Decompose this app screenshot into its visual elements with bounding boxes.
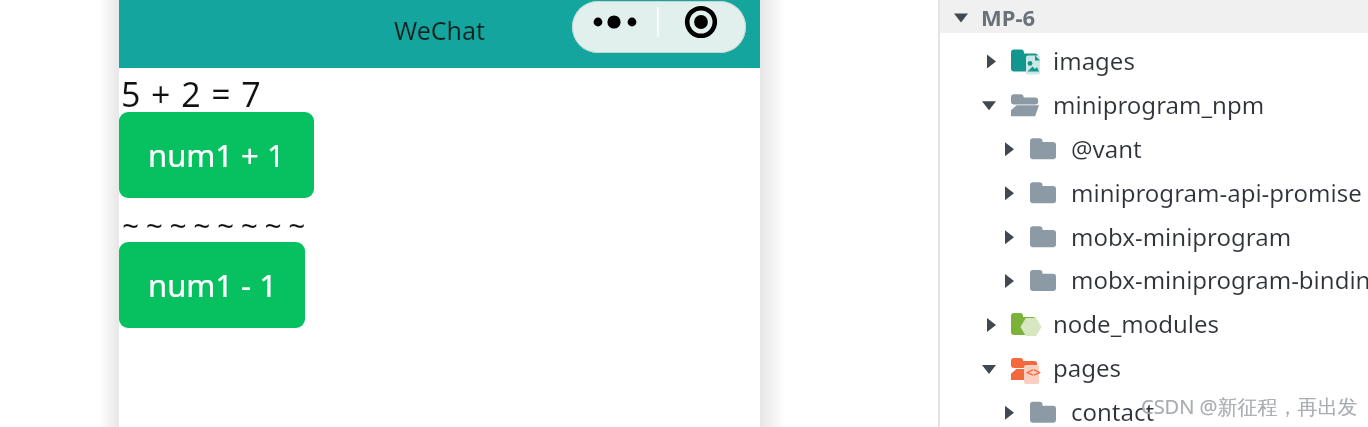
- button[interactable]: [940, 172, 1368, 215]
- button[interactable]: [940, 392, 1368, 427]
- staticText: 5 + 2 = 7: [121, 71, 262, 117]
- staticText: WeChat: [119, 13, 760, 47]
- staticText: miniprogram-api-promise: [1071, 176, 1362, 209]
- button[interactable]: [940, 128, 1368, 171]
- staticText: node_modules: [1053, 307, 1220, 340]
- staticText: pages: [1053, 351, 1122, 384]
- button[interactable]: num1 + 1: [119, 112, 314, 198]
- button[interactable]: [940, 260, 1368, 303]
- button[interactable]: [940, 0, 1368, 33]
- staticText: contact: [1071, 395, 1155, 427]
- staticText: MP-6: [981, 2, 1036, 32]
- button[interactable]: [940, 40, 1368, 83]
- button[interactable]: [940, 304, 1368, 347]
- staticText: @vant: [1071, 132, 1142, 165]
- staticText: num1 - 1: [148, 264, 277, 306]
- button[interactable]: [940, 84, 1368, 127]
- staticText: <>: [1026, 363, 1041, 381]
- staticText: num1 + 1: [148, 134, 285, 176]
- staticText: miniprogram_npm: [1053, 88, 1265, 121]
- staticText: mobx-miniprogram: [1071, 220, 1292, 253]
- button[interactable]: [940, 216, 1368, 259]
- staticText: CSDN @新征程，再出发: [1141, 393, 1358, 420]
- button[interactable]: [940, 348, 1368, 391]
- staticText: images: [1053, 44, 1135, 77]
- staticText: mobx-miniprogram-bindings: [1071, 263, 1368, 296]
- button[interactable]: [572, 1, 746, 53]
- staticText: ~ ~ ~ ~ ~ ~ ~ ~: [122, 205, 305, 246]
- button[interactable]: num1 - 1: [119, 242, 305, 328]
